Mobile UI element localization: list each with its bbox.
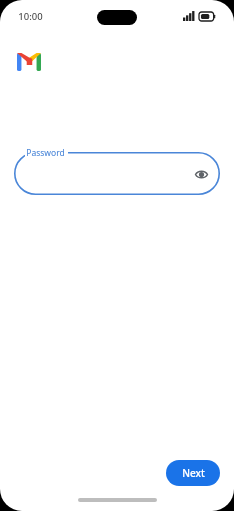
staticText: Next [182, 466, 205, 480]
staticText: 10:00 [18, 10, 43, 23]
button[interactable]: Show password [188, 161, 214, 187]
button[interactable]: Password [14, 152, 220, 195]
staticText: Password [26, 147, 65, 159]
button[interactable]: Next [166, 460, 220, 486]
